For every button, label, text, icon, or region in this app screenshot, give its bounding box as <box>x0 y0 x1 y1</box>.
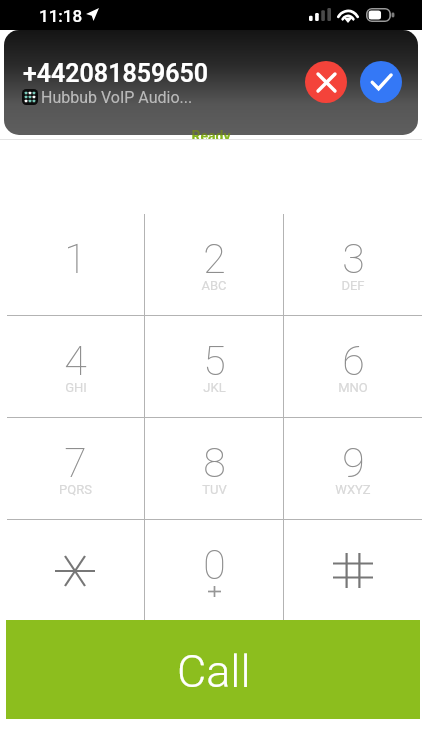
staticText: 9 <box>342 439 365 487</box>
staticText: 7 <box>64 439 87 487</box>
staticText: TUV <box>202 482 227 497</box>
staticText: JKL <box>203 380 226 395</box>
staticText: 11:18 <box>39 6 83 26</box>
staticText: 0 <box>203 541 226 589</box>
button[interactable]: 4 <box>7 316 144 417</box>
button[interactable]: Decline call <box>305 61 347 103</box>
button[interactable]: 7 <box>7 418 144 519</box>
staticText: DEF <box>341 278 365 293</box>
button[interactable]: 2 <box>145 214 283 315</box>
button[interactable]: Accept call <box>360 61 402 103</box>
button[interactable]: 1 <box>7 214 144 315</box>
button[interactable]: 9 <box>284 418 422 519</box>
button[interactable]: 0 <box>145 520 283 621</box>
staticText: 4 <box>64 337 87 385</box>
staticText: 5 <box>203 337 226 385</box>
button[interactable]: 6 <box>284 316 422 417</box>
staticText: MNO <box>338 380 368 395</box>
staticText: Ready <box>0 128 422 135</box>
button[interactable]: 8 <box>145 418 283 519</box>
staticText: +442081859650 <box>23 59 209 88</box>
staticText: 3 <box>342 235 365 283</box>
staticText: WXYZ <box>335 482 371 497</box>
button[interactable] <box>7 520 144 621</box>
button[interactable] <box>284 520 422 621</box>
staticText: GHI <box>65 380 87 395</box>
staticText: Ready <box>0 135 422 139</box>
staticText: ABC <box>201 278 227 293</box>
button[interactable]: Call <box>6 620 420 719</box>
staticText: 6 <box>342 337 365 385</box>
staticText: Call <box>177 645 251 698</box>
staticText: 2 <box>203 235 226 283</box>
staticText: Hubbub VoIP Audio... <box>41 88 193 107</box>
button[interactable]: 3 <box>284 214 422 315</box>
staticText: 1 <box>64 235 87 283</box>
staticText: 8 <box>203 439 226 487</box>
staticText: PQRS <box>59 482 92 497</box>
button[interactable]: 5 <box>145 316 283 417</box>
